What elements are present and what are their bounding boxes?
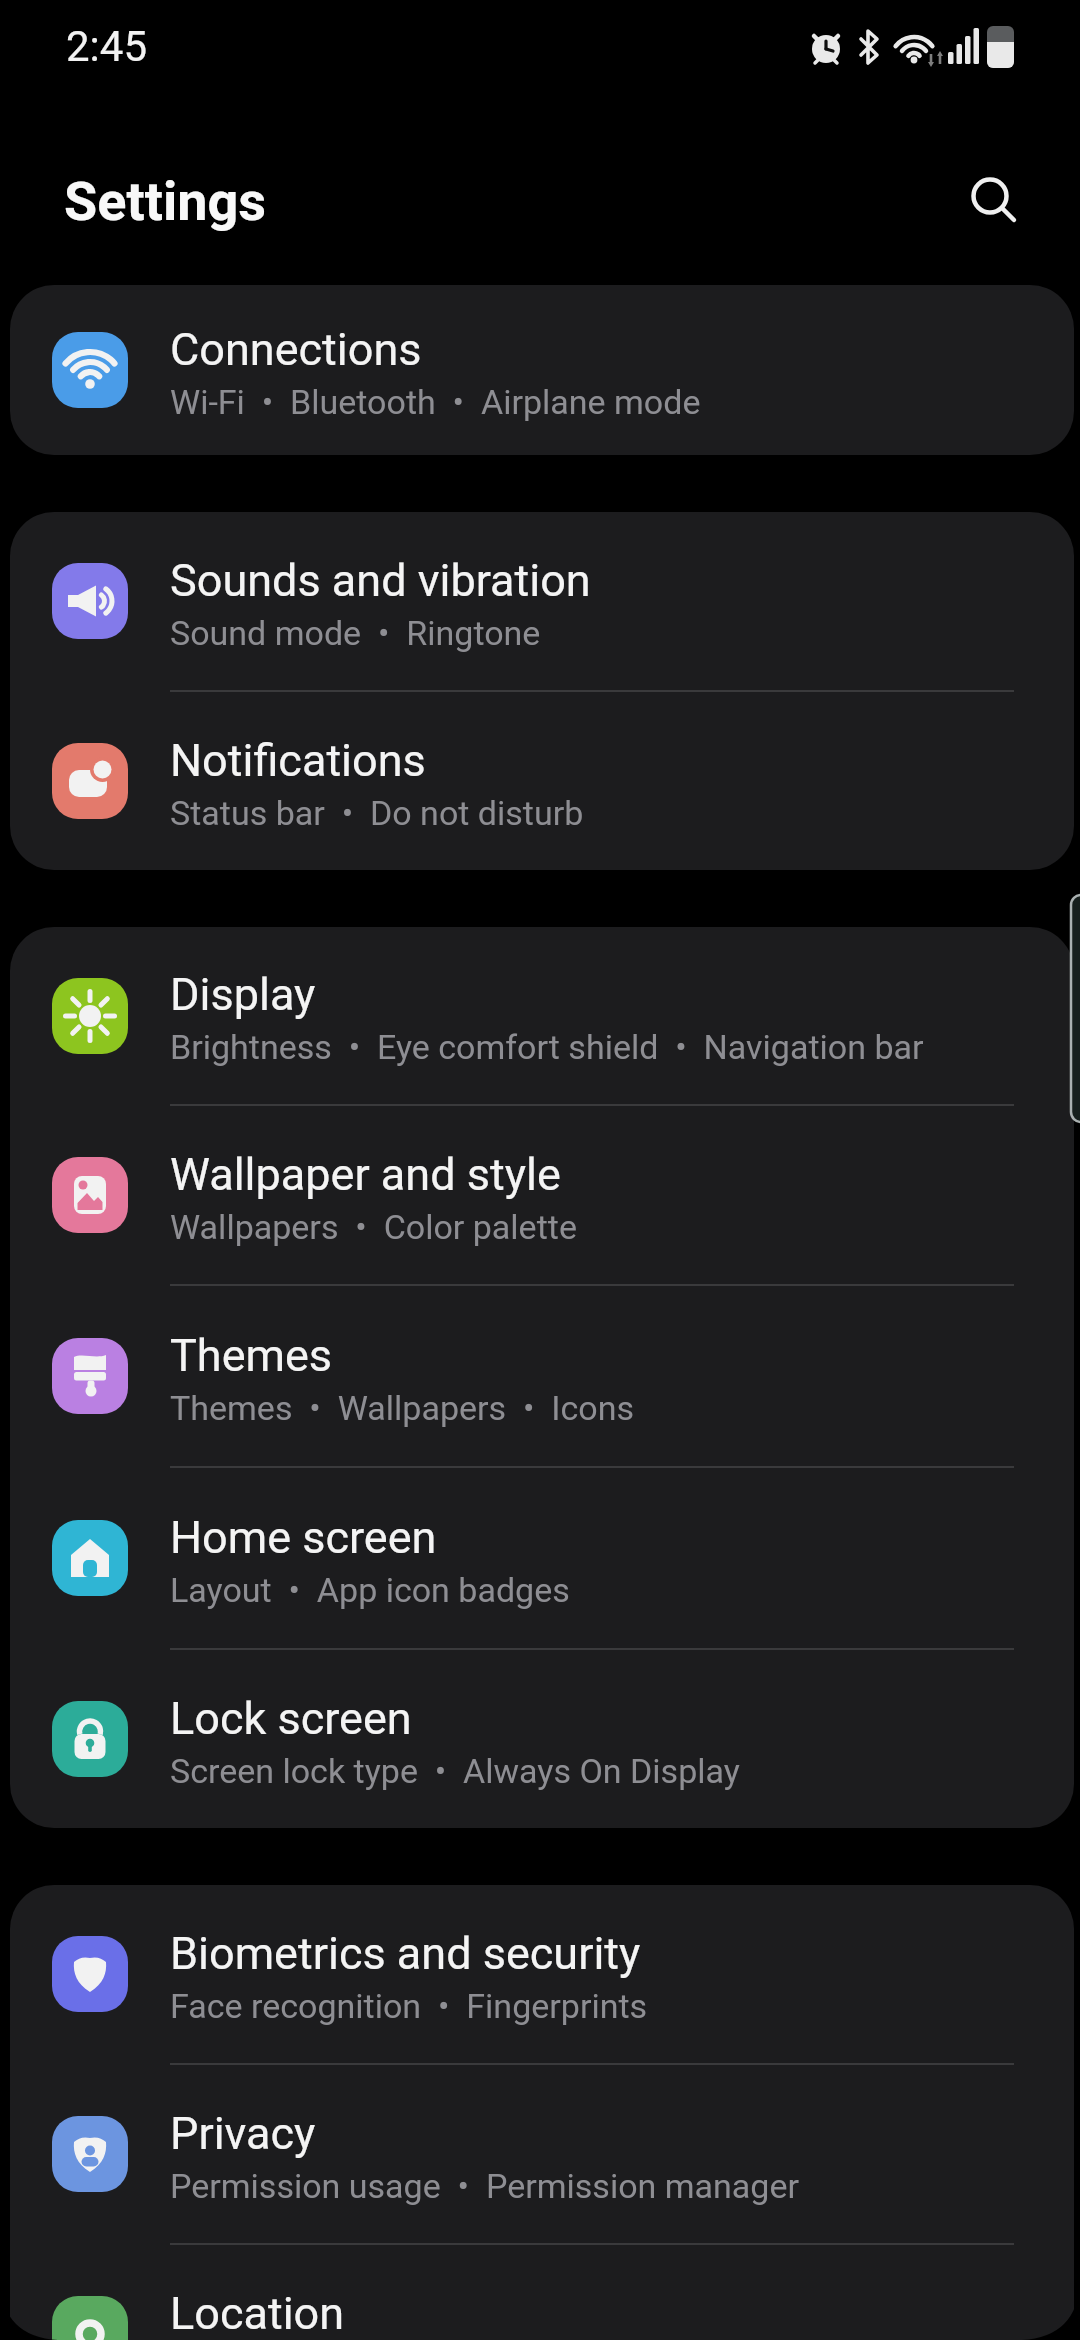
staticText: 2:45 [66, 22, 147, 71]
staticText: Wallpapers • Color palette [170, 1207, 577, 1247]
button[interactable]: Connections [10, 285, 1074, 455]
staticText: Privacy [170, 2107, 316, 2160]
staticText: Wi-Fi • Bluetooth • Airplane mode [170, 382, 701, 422]
button[interactable]: Themes [10, 1286, 1074, 1466]
staticText: Themes [170, 1329, 333, 1382]
button[interactable]: Lock screen [10, 1650, 1074, 1828]
button[interactable]: Sounds and vibration [10, 512, 1074, 690]
button[interactable]: Home screen [10, 1468, 1074, 1648]
staticText: Brightness • Eye comfort shield • Naviga… [170, 1027, 924, 1067]
staticText: Settings [64, 170, 267, 233]
staticText: Themes • Wallpapers • Icons [170, 1388, 635, 1428]
staticText: Wallpaper and style [170, 1148, 561, 1201]
staticText: Location [170, 2287, 345, 2340]
staticText: Screen lock type • Always On Display [170, 1751, 740, 1791]
staticText: Home screen [170, 1511, 437, 1564]
button[interactable]: Notifications [10, 692, 1074, 870]
staticText: Sounds and vibration [170, 554, 591, 607]
button[interactable]: Display [10, 927, 1074, 1104]
button[interactable]: Location [10, 2245, 1074, 2340]
staticText: Display [170, 968, 316, 1021]
staticText: Permission usage • Permission manager [170, 2166, 799, 2206]
staticText: Status bar • Do not disturb [170, 793, 584, 833]
staticText: Face recognition • Fingerprints [170, 1986, 648, 2026]
button[interactable]: Wallpaper and style [10, 1106, 1074, 1284]
staticText: Connections [170, 323, 422, 376]
staticText: Lock screen [170, 1692, 412, 1745]
button[interactable]: Biometrics and security [10, 1885, 1074, 2063]
staticText: Sound mode • Ringtone [170, 613, 541, 653]
button[interactable] [955, 160, 1035, 240]
button[interactable]: Privacy [10, 2065, 1074, 2243]
staticText: Notifications [170, 734, 426, 787]
staticText: Layout • App icon badges [170, 1570, 570, 1610]
staticText: Biometrics and security [170, 1927, 641, 1980]
